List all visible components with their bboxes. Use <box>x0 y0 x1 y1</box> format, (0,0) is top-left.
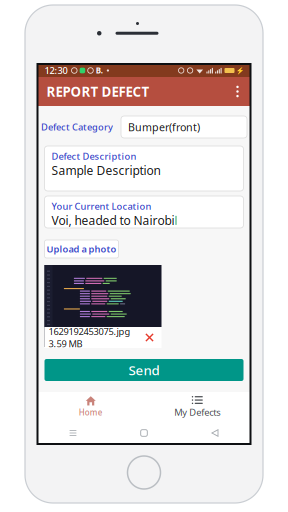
button[interactable]: Recents <box>37 422 108 444</box>
staticText: REPORT DEFECT <box>46 83 149 100</box>
staticText: 3.59 MB <box>48 337 82 350</box>
staticText: B. <box>96 65 103 76</box>
staticText: Sample Description <box>51 162 160 178</box>
button[interactable]: Defect Description <box>44 146 243 191</box>
staticText: Bumper(front) <box>128 120 200 134</box>
button[interactable]: More options <box>227 77 247 106</box>
button[interactable]: Bumper(front) <box>121 116 247 138</box>
button[interactable]: Home <box>37 392 144 422</box>
staticText: Voi, headed to Nairobi <box>51 212 174 228</box>
staticText: Upload a photo <box>46 243 116 255</box>
staticText: Your Current Location <box>51 200 151 212</box>
staticText: Home <box>79 407 103 418</box>
staticText: 12:30 <box>44 64 67 77</box>
button[interactable]: Upload a photo <box>44 240 118 258</box>
button[interactable]: Back <box>179 422 250 444</box>
button[interactable]: Remove photo <box>141 329 157 345</box>
button[interactable]: My Defects <box>144 392 250 422</box>
button[interactable]: Home <box>108 422 179 444</box>
staticText: Defect Description <box>51 150 136 162</box>
button[interactable]: Send <box>44 359 243 381</box>
staticText: Defect Category <box>41 121 113 133</box>
staticText: Send <box>128 361 159 379</box>
staticText: ⚡ <box>235 67 243 74</box>
staticText: My Defects <box>174 406 220 418</box>
staticText: 1629192453075.jpg <box>48 325 130 337</box>
button[interactable]: Your Current Location <box>44 196 243 228</box>
